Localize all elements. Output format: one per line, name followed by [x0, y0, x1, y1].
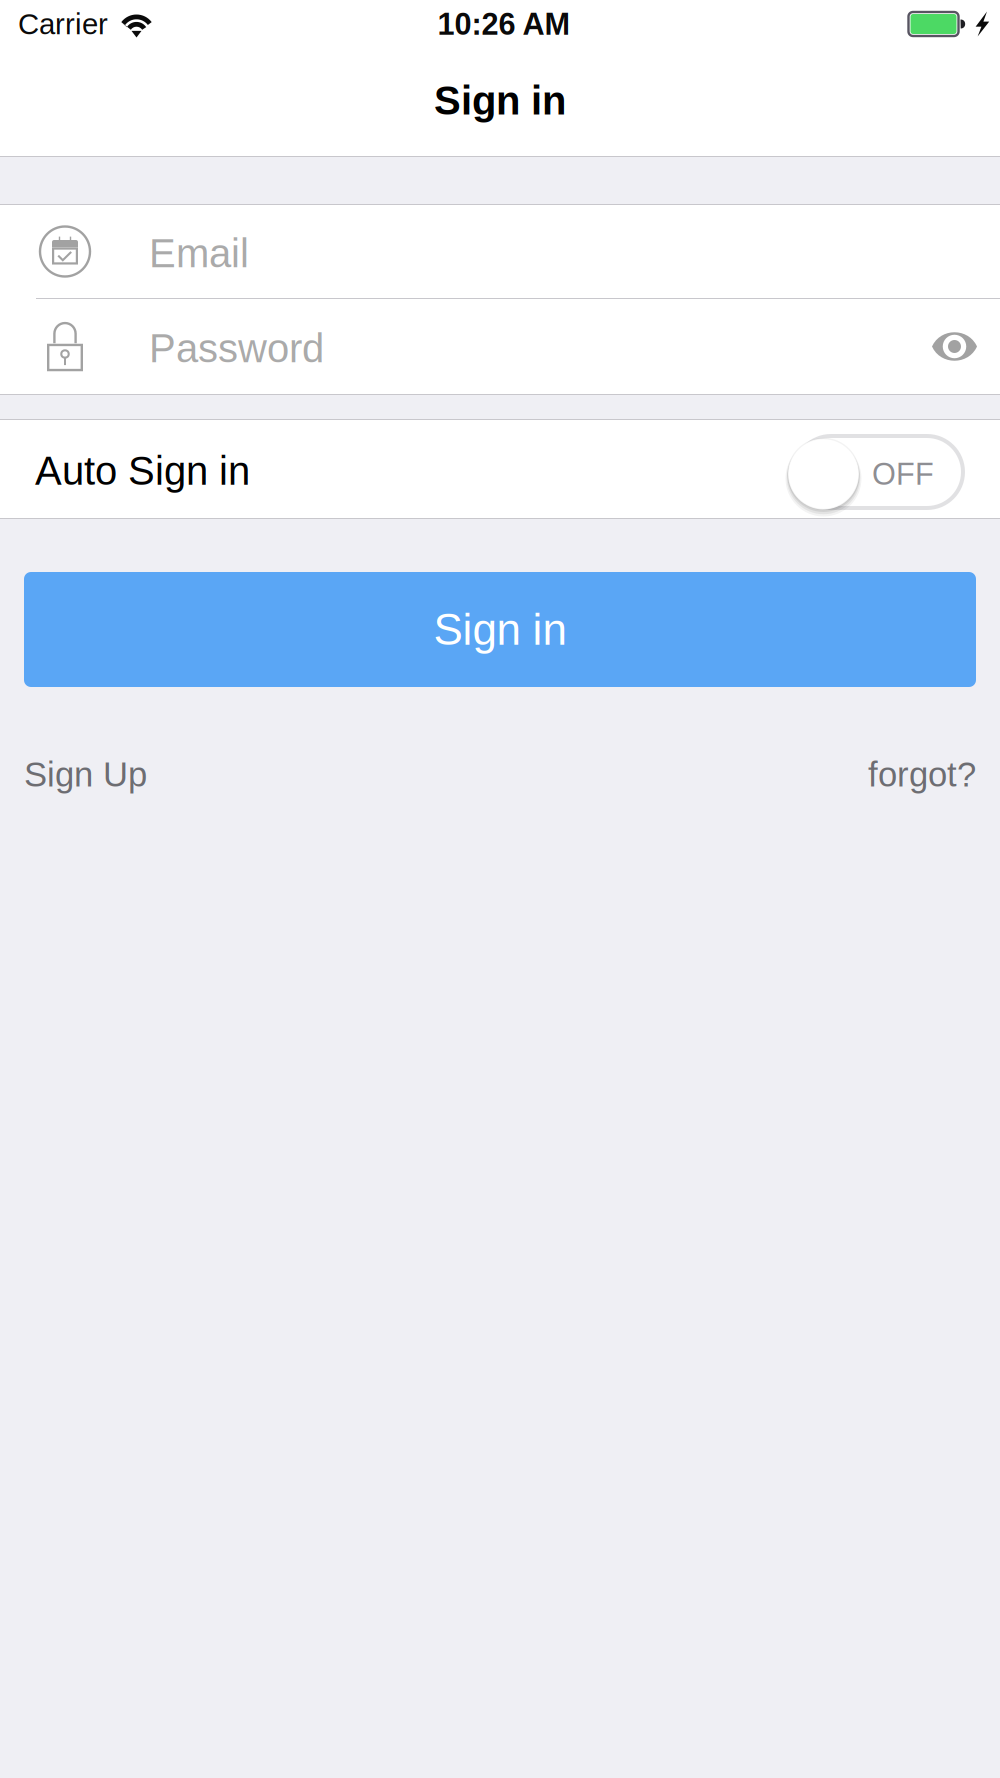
button[interactable]: Sign Up	[24, 755, 147, 794]
staticText: Sign Up	[24, 755, 147, 794]
staticText: Auto Sign in	[35, 449, 250, 493]
staticText: Sign in	[434, 78, 566, 123]
button[interactable]: Show password	[909, 299, 1000, 394]
staticText: Password	[149, 326, 324, 371]
button[interactable]: Auto Sign in	[0, 420, 1000, 518]
staticText: OFF	[872, 457, 934, 491]
staticText: Carrier	[18, 8, 108, 40]
staticText: Email	[149, 231, 249, 276]
staticText: Sign in	[433, 605, 566, 654]
staticText: forgot?	[868, 755, 976, 794]
button[interactable]: forgot?	[868, 755, 976, 794]
button[interactable]: Sign in	[24, 572, 976, 687]
staticText: 10:26 AM	[437, 7, 570, 41]
